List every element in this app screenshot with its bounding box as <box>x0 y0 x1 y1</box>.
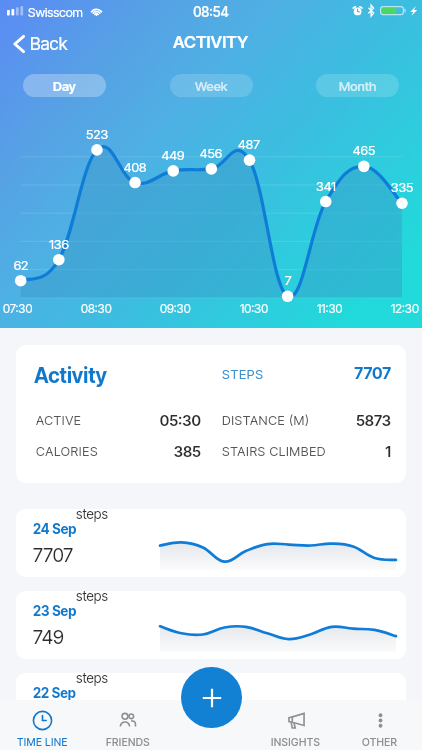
staticText: STEPS <box>222 366 264 382</box>
staticText: TIME LINE <box>17 736 68 749</box>
staticText: Week <box>195 78 228 94</box>
button[interactable]: 24 Sep <box>16 509 406 577</box>
staticText: CALORIES <box>36 444 99 459</box>
button[interactable]: Day <box>23 74 106 97</box>
staticText: 05:30 <box>101 411 201 429</box>
staticText: 11:30 <box>317 301 343 316</box>
staticText: 62 <box>5 257 37 273</box>
staticText: 24 Sep <box>33 521 77 537</box>
staticText: 2102 <box>33 708 72 731</box>
staticText: 22 Sep <box>33 685 76 701</box>
staticText: Swisscom <box>28 5 83 20</box>
staticText: 408 <box>119 159 151 175</box>
staticText: Day <box>53 78 76 94</box>
staticText: Activity <box>34 363 107 388</box>
staticText: STAIRS CLIMBED <box>222 444 327 459</box>
staticText: 749 <box>33 626 64 649</box>
staticText: 465 <box>348 142 380 158</box>
staticText: 08:54 <box>193 4 229 20</box>
button[interactable]: TIME LINE <box>0 700 85 750</box>
staticText: 23 Sep <box>33 603 77 619</box>
staticText: 09:30 <box>160 301 191 316</box>
staticText: 7707 <box>291 363 391 382</box>
staticText: Month <box>339 78 377 94</box>
staticText: steps <box>76 588 108 604</box>
staticText: 335 <box>386 179 418 195</box>
staticText: DISTANCE (M) <box>222 413 310 428</box>
staticText: 1 <box>291 442 391 460</box>
staticText: 523 <box>81 126 113 142</box>
button[interactable]: FRIENDS <box>85 700 170 750</box>
staticText: 5873 <box>291 411 391 429</box>
button[interactable]: INSIGHTS <box>254 700 338 750</box>
staticText: 487 <box>233 136 265 152</box>
staticText: OTHER <box>362 736 398 749</box>
staticText: 10:30 <box>240 301 269 316</box>
button[interactable]: 23 Sep <box>16 591 406 659</box>
staticText: 449 <box>157 147 189 163</box>
staticText: steps <box>76 506 108 522</box>
staticText: FRIENDS <box>106 736 150 749</box>
staticText: 12:30 <box>391 301 419 316</box>
staticText: Back <box>30 33 68 54</box>
staticText: 7707 <box>33 544 74 567</box>
staticText: ACTIVE <box>36 413 82 428</box>
button[interactable]: Week <box>170 74 253 97</box>
staticText: 341 <box>310 178 342 194</box>
staticText: 07:30 <box>3 301 33 316</box>
staticText: 08:30 <box>81 301 112 316</box>
staticText: 136 <box>43 236 75 252</box>
staticText: steps <box>76 670 108 686</box>
button[interactable]: Add <box>181 667 242 728</box>
staticText: INSIGHTS <box>271 736 321 749</box>
staticText: ACTIVITY <box>173 32 249 52</box>
staticText: 385 <box>101 442 201 460</box>
staticText: 7 <box>272 272 304 288</box>
staticText: 456 <box>195 145 227 161</box>
button[interactable]: Back <box>0 29 78 60</box>
button[interactable]: 22 Sep <box>16 673 406 741</box>
button[interactable]: Month <box>316 74 399 97</box>
button[interactable]: OTHER <box>338 700 422 750</box>
